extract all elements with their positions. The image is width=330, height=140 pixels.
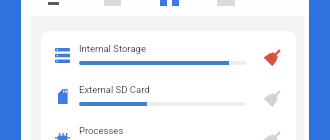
- button[interactable]: Processes: [41, 113, 296, 140]
- staticText: External SD Card: [79, 84, 150, 95]
- button[interactable]: Clean: [263, 86, 284, 107]
- button[interactable]: Top app bar: [21, 0, 309, 16]
- staticText: Processes: [79, 125, 124, 136]
- button[interactable]: External SD Card: [41, 72, 296, 112]
- button[interactable]: Clean: [263, 127, 284, 140]
- staticText: Internal Storage: [79, 43, 146, 54]
- button[interactable]: Clean: [263, 45, 284, 66]
- button[interactable]: Internal Storage: [41, 31, 296, 71]
